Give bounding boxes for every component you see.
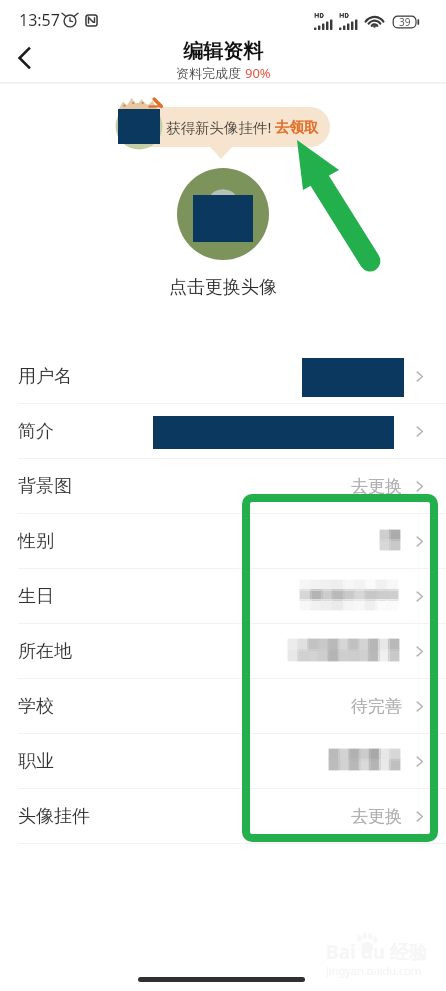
button[interactable]: 头像挂件 [0,789,446,844]
button[interactable] [177,168,269,260]
button[interactable]: 简介 [0,404,446,459]
staticText: 点击更换头像 [169,276,277,299]
staticText: 简介 [18,420,54,443]
staticText: 39 [399,15,411,29]
button[interactable]: 职业 [0,734,446,789]
button[interactable]: 性别 [0,514,446,569]
staticText: 用户名 [18,365,72,388]
staticText: 去更换 [351,806,402,827]
staticText: 所在地 [18,640,72,663]
button[interactable]: 获得新头像挂件! [118,107,330,147]
staticText: 待完善 [351,696,402,717]
staticText: 生日 [18,585,54,608]
staticText: 职业 [18,750,54,773]
staticText: Bai du 经验 [326,939,426,965]
button[interactable]: 所在地 [0,624,446,679]
staticText: 性别 [18,530,54,553]
button[interactable]: 学校 [0,679,446,734]
staticText: 90% [245,64,271,82]
staticText: 编辑资料 [183,39,263,64]
button[interactable]: 用户名 [0,349,446,404]
staticText: 去领取 [275,118,319,136]
staticText: 获得新头像挂件! [166,117,272,137]
staticText: 13:57 [19,9,60,31]
staticText: 去更换 [351,476,402,497]
button[interactable]: 背景图 [0,459,446,514]
staticText: 学校 [18,695,54,718]
staticText: 背景图 [18,475,72,498]
staticText: 头像挂件 [18,805,90,828]
staticText: jingyan.baidu.com [326,963,422,978]
staticText: 资料完成度 [176,64,245,82]
button[interactable]: Back [4,38,44,78]
button[interactable]: 生日 [0,569,446,624]
